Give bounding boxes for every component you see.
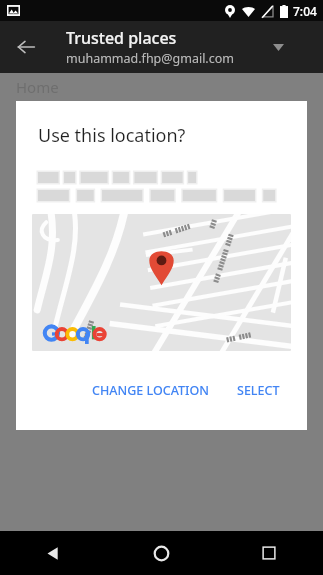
staticText: SELECT: [237, 382, 280, 399]
button[interactable]: Home: [107, 531, 215, 575]
staticText: CHANGE LOCATION: [92, 382, 209, 399]
staticText: Home: [16, 77, 59, 97]
button[interactable]: Back: [6, 27, 46, 67]
staticText: 7:04: [293, 3, 317, 19]
staticText: muhammad.fhp@gmail.com: [66, 50, 234, 67]
staticText: Use this location?: [38, 123, 186, 148]
button[interactable]: Expand account: [263, 32, 293, 62]
button[interactable]: SELECT: [229, 375, 288, 406]
button[interactable]: Recent apps: [215, 531, 323, 575]
button[interactable]: CHANGE LOCATION: [84, 375, 217, 406]
button[interactable]: Map preview: [32, 214, 291, 351]
staticText: Trusted places: [66, 27, 177, 49]
button[interactable]: Back: [0, 531, 107, 575]
